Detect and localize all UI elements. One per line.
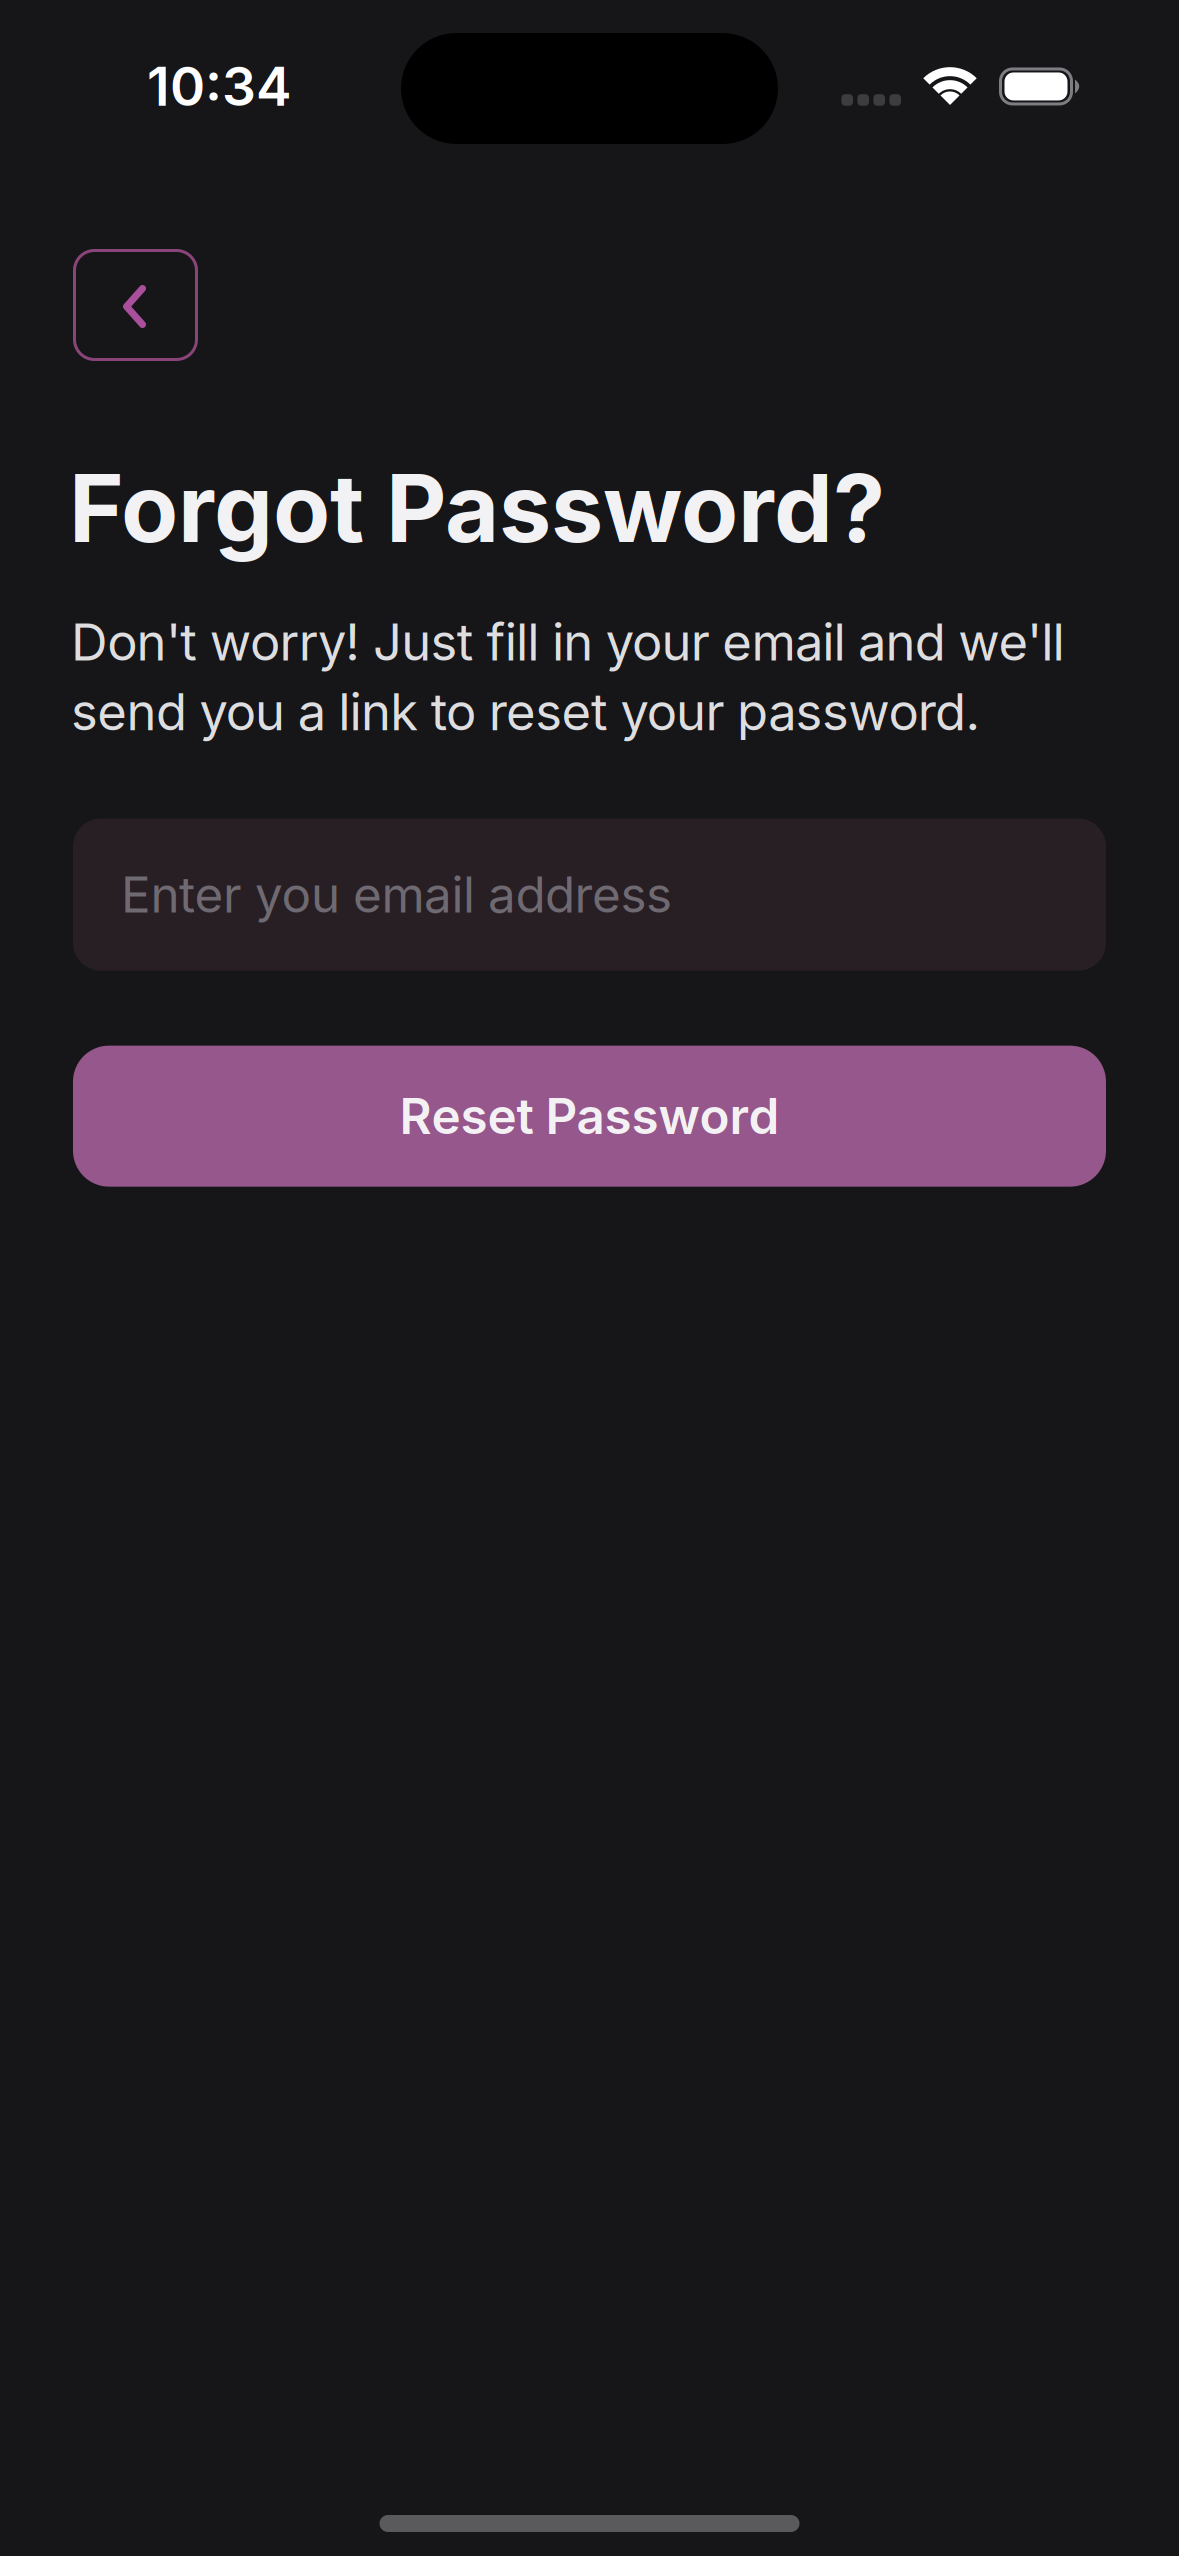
staticText: Reset Password <box>399 1087 779 1145</box>
button[interactable]: Reset Password <box>73 1046 1106 1187</box>
button[interactable]: Back <box>73 249 198 361</box>
staticText: Enter you email address <box>121 866 672 924</box>
staticText: Don't worry! Just fill in your email and… <box>71 612 1064 742</box>
staticText: 10:34 <box>147 55 292 118</box>
staticText: Forgot Password? <box>69 453 885 563</box>
